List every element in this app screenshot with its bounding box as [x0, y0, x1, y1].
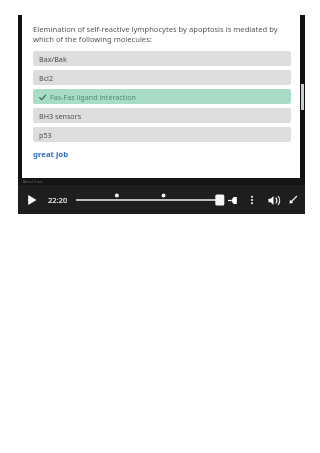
- button[interactable]: Fullscreen: [286, 193, 299, 206]
- staticText: Bcl2: [39, 73, 54, 83]
- staticText: Bax/Bak: [39, 54, 67, 64]
- staticText: About Topic: [23, 179, 43, 184]
- button[interactable]: BH3 sensors: [33, 108, 291, 123]
- button[interactable]: Seek bar: [76, 193, 222, 207]
- staticText: BH3 sensors: [39, 111, 82, 121]
- staticText: p53: [39, 130, 52, 140]
- button[interactable]: Bcl2: [33, 70, 291, 85]
- button[interactable]: Bax/Bak: [33, 51, 291, 66]
- button[interactable]: Play: [24, 192, 40, 208]
- button[interactable]: Volume: [265, 192, 281, 208]
- staticText: 22:20: [48, 195, 68, 205]
- staticText: Elemination of self-reactive lymphocytes…: [33, 24, 291, 44]
- button[interactable]: great job: [33, 149, 69, 160]
- staticText: great job: [33, 149, 69, 160]
- button[interactable]: More options: [245, 193, 259, 207]
- staticText: Fas-Fas ligand interaction: [50, 92, 136, 102]
- button[interactable]: Cast: [225, 193, 239, 207]
- button[interactable]: p53: [33, 127, 291, 142]
- button[interactable]: Fas-Fas ligand interaction: [33, 89, 291, 104]
